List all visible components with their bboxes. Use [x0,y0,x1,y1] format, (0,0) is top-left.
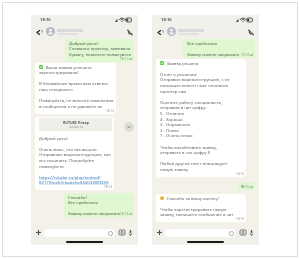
staticText: принтер сам [160,88,187,94]
button[interactable]: Scroll to bottom [124,122,134,132]
staticText: Добрый день! [69,40,99,46]
staticText: 3 - Нормально [160,121,191,127]
button[interactable]: Camera [239,229,246,236]
button[interactable]: Video call [247,28,255,36]
staticText: Любой другой текст инициирует [160,160,228,166]
staticText: помощью клиент смог починить [160,82,229,88]
staticText: Добрый день! [39,135,69,141]
staticText: 18:16 [161,17,172,23]
staticText: Оцените работу специалиста, [160,99,223,105]
staticText: Отчет о решении: [160,71,198,77]
button[interactable] [165,229,236,237]
button[interactable] [44,229,115,237]
staticText: Сломался принтер, зажевало [69,45,131,51]
button[interactable]: Attach [156,229,163,236]
staticText: https://rutube.ru/play/embed/ [39,174,101,180]
staticText: 18:14 [241,53,249,57]
staticText: 9 [41,29,44,34]
staticText: наш специалист [39,86,74,92]
staticText: в сообщения и не удаляйте их [39,103,103,109]
staticText: Отправил видеоинструкцию, с ее [160,76,230,82]
staticText: пожалуйста [39,163,64,169]
staticText: Заявку можно закрывать [68,210,121,216]
staticText: 82175feafcfcbabe5a04d03280f269 [39,179,109,185]
staticText: Спасибо за вашу оценку! [160,195,219,201]
staticText: новую заявку [160,166,189,172]
staticText: заявку, напишите сообщение в чат [160,211,234,217]
staticText: Ваша заявка успешно [39,64,92,70]
staticText: отправив в чат цифру: [160,104,207,110]
staticText [39,140,41,146]
staticText: Все сработало [68,199,99,205]
staticText: 5 [241,183,244,189]
staticText: бумагу, помогите пожалуйста [69,51,131,57]
button[interactable]: Video call [126,28,134,36]
staticText: отправьте в чат цифру 0 [160,149,211,155]
staticText: 18:14 [120,212,128,216]
staticText: rutube.ru [69,125,83,129]
button[interactable]: Camera [118,229,125,236]
staticText: Все сработало [187,40,218,46]
staticText: 9 [162,29,165,34]
staticText: Пожалуйста, не вносите изменения [39,97,114,103]
staticText: Отправляю видеоинструкцию, как [39,151,111,157]
staticText: 1 - Очень плохо [160,132,193,138]
button[interactable]: Attach [35,229,42,236]
button[interactable]: Back [156,29,162,35]
staticText: 18:16 [40,17,51,23]
staticText: 18:14 [104,185,112,189]
staticText: Чтобы возобновить заявку, [160,144,218,150]
staticText: зарегистрирована! [39,69,79,75]
staticText: 18:16 [236,217,244,221]
staticText: 18:12 [106,109,114,113]
button[interactable]: Back [35,29,41,35]
staticText: 4 - Хорошо [160,116,183,122]
staticText: 5 - Отлично [160,110,185,116]
staticText: RUTUBE Плеер [63,120,89,125]
staticText: Очень жаль, что так вышло. [39,146,98,152]
staticText: 18:16 [241,185,249,189]
staticText: 2 - Плохо [160,127,179,133]
button[interactable]: Voice message [248,229,255,236]
staticText: 18:11 [120,57,128,61]
staticText: 18:15 [236,172,244,176]
staticText: В ближайшее время вам ответит [39,80,109,86]
staticText: его починить. Попробуйте [39,157,95,163]
staticText: Заявку можно закрывать [187,51,240,57]
staticText: Спасибо! [68,194,87,200]
button[interactable]: Voice message [127,229,134,236]
staticText: Чтобы зарегистрировать новую [160,206,227,212]
staticText: Заявка решена [160,60,199,66]
